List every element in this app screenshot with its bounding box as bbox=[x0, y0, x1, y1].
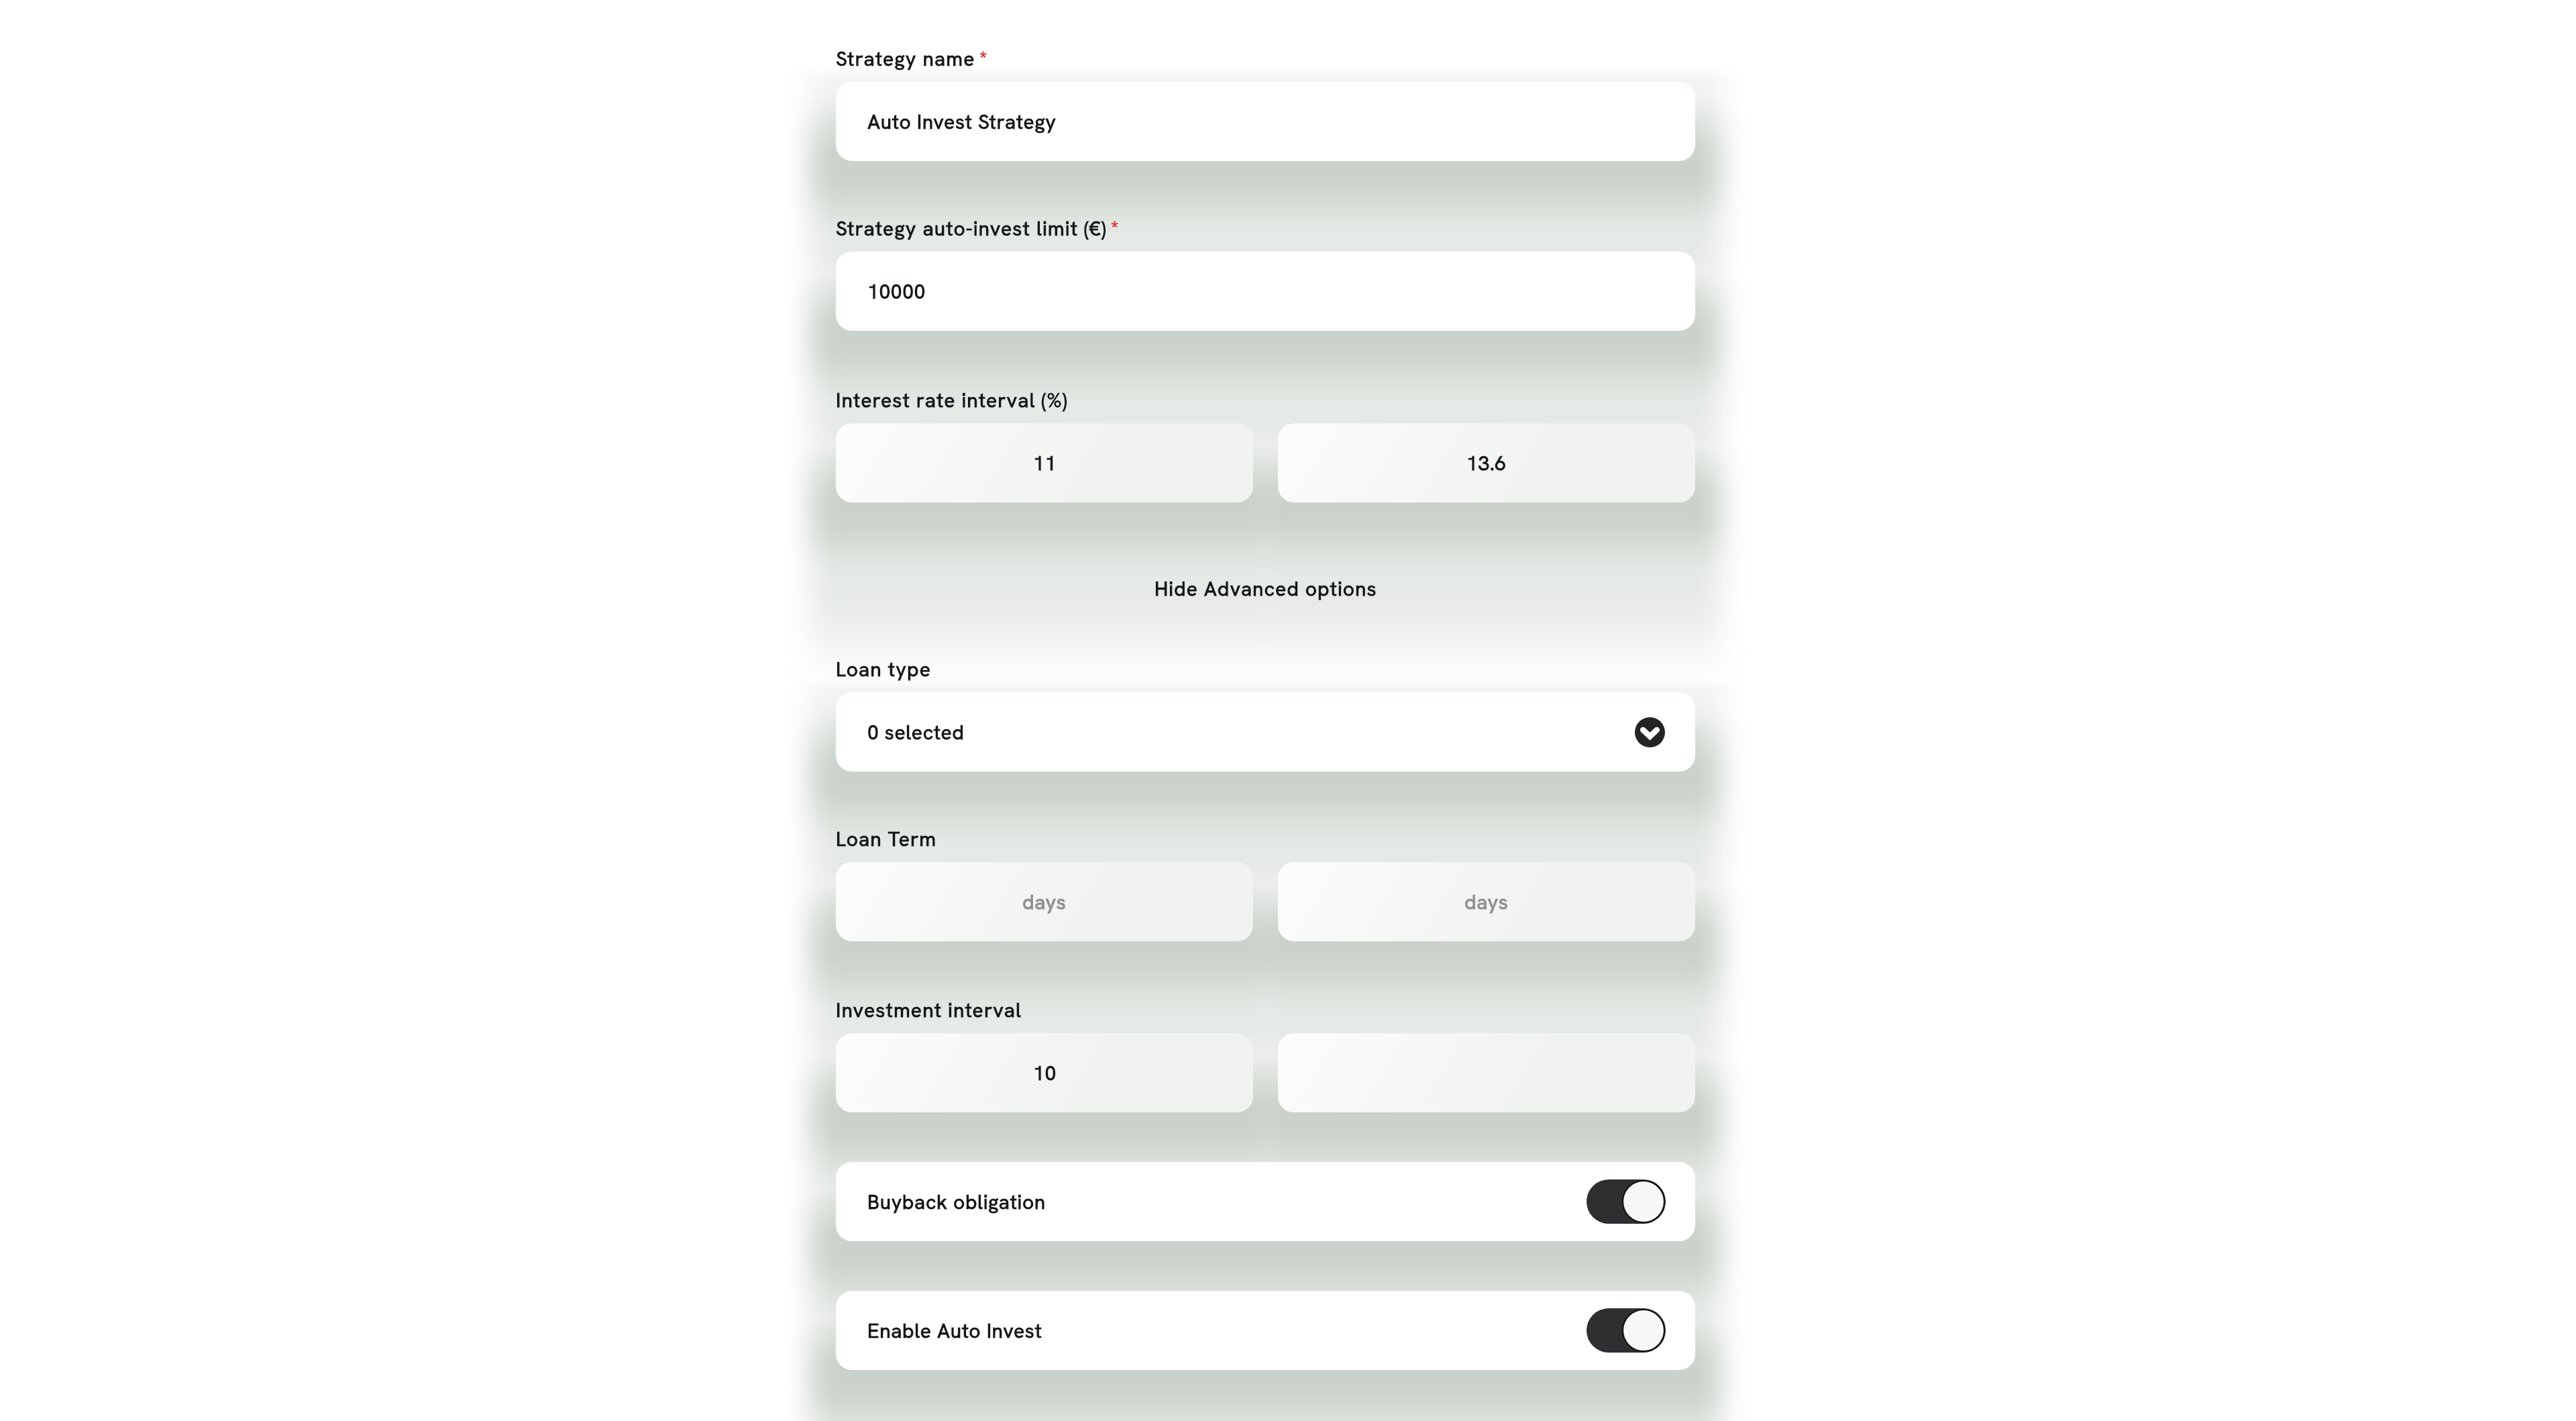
staticText: 13.6 bbox=[1466, 450, 1507, 476]
button[interactable]: days bbox=[836, 862, 1253, 941]
button[interactable]: Hide Advanced options bbox=[1137, 568, 1395, 610]
staticText: 0 selected bbox=[867, 719, 965, 745]
staticText: * bbox=[979, 46, 987, 70]
other: Enable Auto Invest switch, on bbox=[1587, 1308, 1666, 1353]
button[interactable]: Buyback obligation bbox=[836, 1162, 1695, 1241]
button[interactable]: days bbox=[1278, 862, 1695, 941]
other: Buyback obligation switch, on bbox=[1587, 1179, 1666, 1224]
button[interactable]: 0 selected bbox=[836, 692, 1695, 772]
staticText: Buyback obligation bbox=[867, 1189, 1046, 1215]
staticText: 10 bbox=[1033, 1060, 1057, 1086]
staticText: Loan type bbox=[836, 656, 931, 682]
staticText: Strategy name bbox=[836, 46, 975, 72]
button[interactable]: Enable Auto Invest bbox=[836, 1291, 1695, 1370]
staticText: Loan Term bbox=[836, 826, 937, 852]
staticText: Auto Invest Strategy bbox=[867, 109, 1057, 135]
staticText: days bbox=[1464, 889, 1509, 915]
staticText: Interest rate interval (%) bbox=[836, 387, 1068, 413]
button[interactable]: 13.6 bbox=[1278, 423, 1695, 503]
staticText: 11 bbox=[1033, 450, 1057, 476]
button[interactable]: Auto Invest Strategy bbox=[836, 82, 1695, 161]
button[interactable] bbox=[1278, 1033, 1695, 1112]
button[interactable]: 10 bbox=[836, 1033, 1253, 1112]
staticText: * bbox=[1111, 215, 1119, 240]
staticText: days bbox=[1022, 889, 1067, 915]
other: Open loan type list bbox=[1635, 717, 1665, 747]
staticText: Strategy auto-invest limit (€) bbox=[836, 215, 1107, 242]
button[interactable]: 10000 bbox=[836, 252, 1695, 331]
button[interactable]: 11 bbox=[836, 423, 1253, 503]
staticText: Enable Auto Invest bbox=[867, 1318, 1042, 1344]
staticText: Investment interval bbox=[836, 997, 1022, 1023]
staticText: 10000 bbox=[867, 278, 926, 305]
